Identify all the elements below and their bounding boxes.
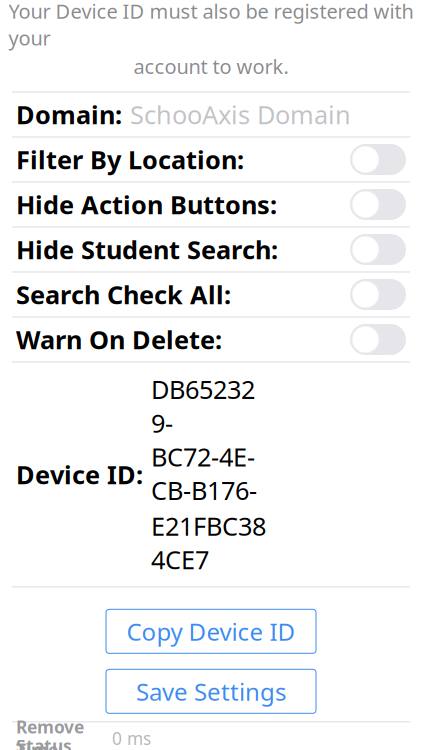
staticText: Your Device ID must also be registered w… xyxy=(8,0,413,51)
staticText: DB652329-BC72-4ECB-B176- xyxy=(151,372,257,507)
staticText: E21FBC384CE7 xyxy=(151,509,266,576)
button[interactable]: Search Check All: xyxy=(0,272,422,316)
staticText: Warn On Delete: xyxy=(16,323,222,356)
staticText: Filter By Location: xyxy=(16,143,244,176)
button[interactable]: Warn On Delete: xyxy=(0,317,422,361)
staticText: Hide Action Buttons: xyxy=(16,188,277,221)
staticText: Hide Student Search: xyxy=(16,233,278,266)
button[interactable]: Hide Student Search: xyxy=(0,227,422,271)
button[interactable]: Save Settings xyxy=(106,669,316,713)
staticText: account to work. xyxy=(133,53,288,79)
staticText: Copy Device ID xyxy=(126,615,295,647)
button[interactable]: Copy Device ID xyxy=(106,609,316,653)
staticText: Search Check All: xyxy=(16,278,231,311)
staticText: Remove Time: xyxy=(16,715,84,750)
button[interactable]: Filter By Location: xyxy=(0,137,422,181)
staticText: Save Settings xyxy=(136,675,286,707)
staticText: 0 ms xyxy=(112,727,151,750)
staticText: Status Time: xyxy=(16,734,72,750)
button[interactable]: Hide Action Buttons: xyxy=(0,182,422,226)
staticText: Domain: xyxy=(16,98,122,131)
staticText: Device ID: xyxy=(16,458,143,491)
staticText: SchooAxis Domain xyxy=(130,98,351,131)
